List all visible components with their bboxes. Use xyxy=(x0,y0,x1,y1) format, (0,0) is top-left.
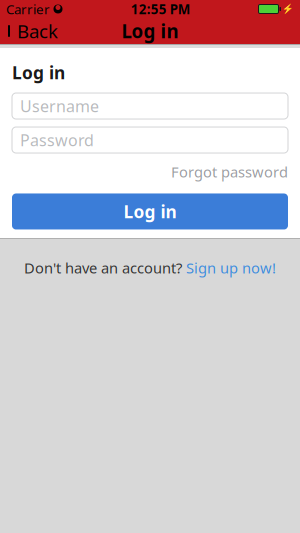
staticText: Don't have an account? xyxy=(24,258,186,277)
button[interactable]: Back xyxy=(0,18,64,44)
button[interactable]: Sign up now! xyxy=(186,258,276,277)
staticText: Sign up now! xyxy=(186,258,276,277)
button[interactable]: Log in xyxy=(12,193,288,229)
staticText: Back xyxy=(17,19,58,43)
staticText: Carrier xyxy=(6,0,50,18)
staticText: Forgot password xyxy=(171,162,288,181)
staticText: Log in xyxy=(123,200,176,223)
staticText: ⚡ xyxy=(282,4,294,14)
staticText: 12:55 PM xyxy=(131,0,191,18)
staticText: Password xyxy=(20,129,94,151)
staticText: Username xyxy=(20,95,99,117)
button[interactable]: Forgot password xyxy=(171,159,288,184)
staticText: Log in xyxy=(121,19,178,43)
staticText: Log in xyxy=(12,61,65,84)
